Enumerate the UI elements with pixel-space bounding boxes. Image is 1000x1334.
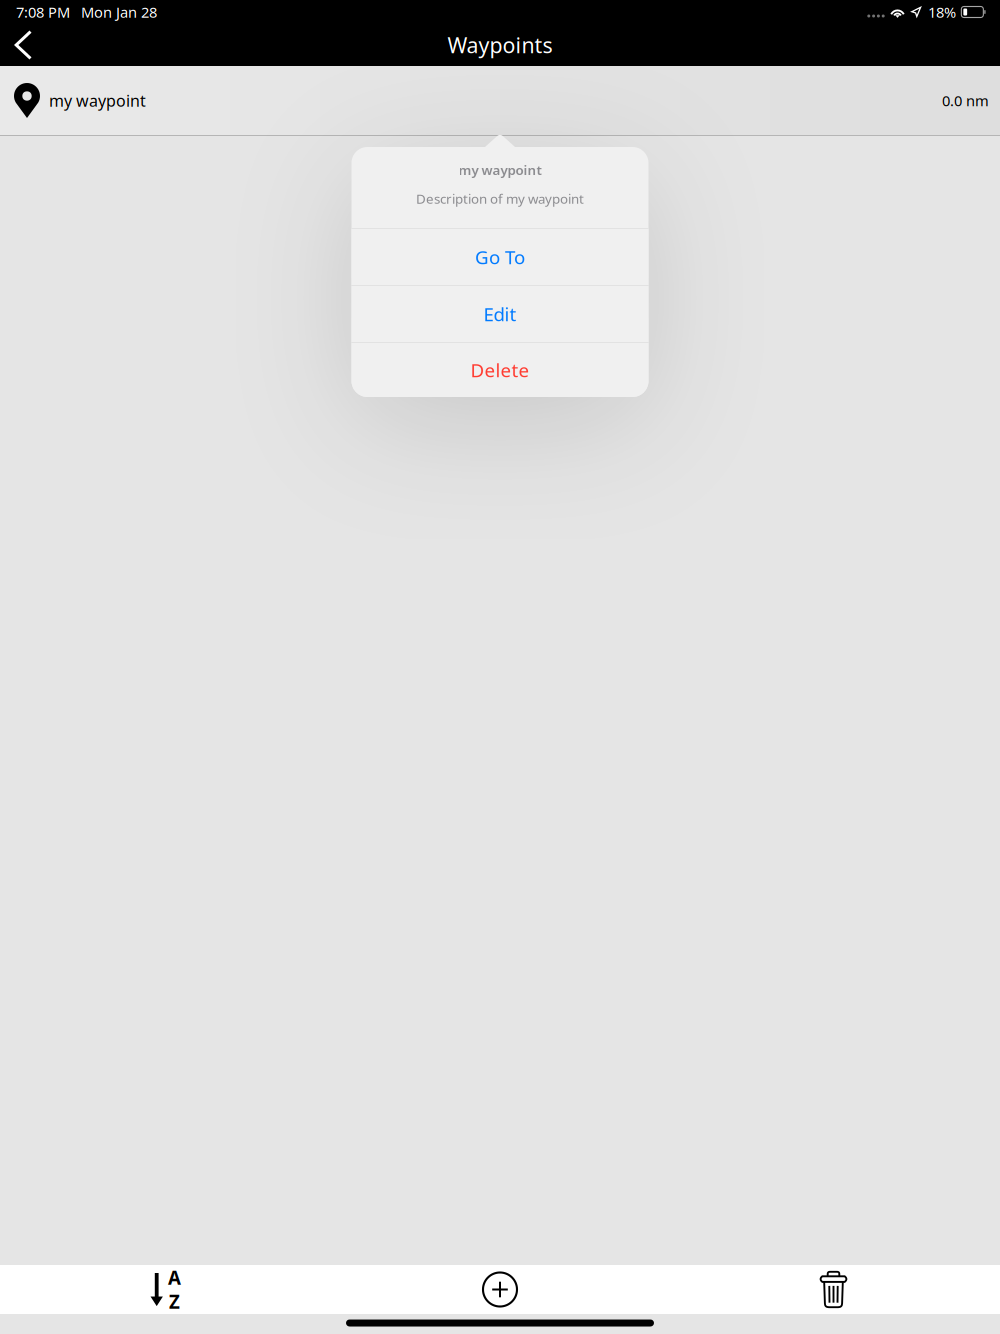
staticText: my waypoint [49, 90, 146, 111]
staticText: A [168, 1265, 181, 1290]
button[interactable]: Delete waypoint [667, 1265, 1000, 1314]
button[interactable]: Add waypoint [333, 1265, 667, 1314]
staticText: my waypoint [458, 161, 541, 179]
staticText: Z [169, 1289, 180, 1314]
staticText: Waypoints [447, 31, 552, 59]
staticText: 0.0 nm [942, 91, 989, 110]
button[interactable]: Back [0, 25, 47, 65]
staticText: Delete [470, 358, 529, 382]
staticText: 7:08 PM [16, 2, 70, 22]
staticText: Edit [483, 302, 516, 326]
button[interactable]: Delete [351, 343, 648, 397]
button[interactable]: Sort A to Z [0, 1265, 333, 1314]
staticText: Mon Jan 28 [81, 2, 157, 22]
staticText: Description of my waypoint [416, 190, 584, 207]
staticText: Go To [475, 245, 525, 269]
button[interactable]: my waypoint [0, 66, 1000, 135]
button[interactable]: Edit [351, 286, 648, 342]
staticText: 18% [928, 2, 956, 22]
button[interactable]: Go To [351, 229, 648, 285]
